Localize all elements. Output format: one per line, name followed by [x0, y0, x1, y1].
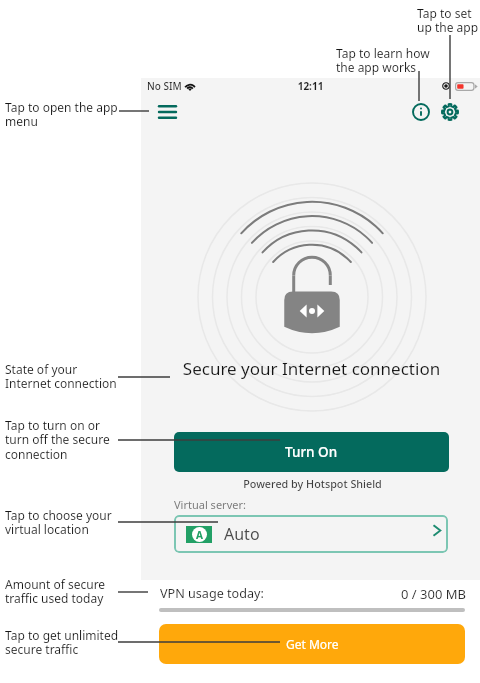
staticText: State of your Internet connection	[5, 361, 117, 392]
staticText: Turn On	[285, 443, 338, 461]
staticText: A	[196, 528, 203, 542]
staticText: Amount of secure traffic used today	[5, 576, 106, 607]
staticText: Powered by Hotspot Shield	[143, 476, 480, 491]
staticText: 12:11	[141, 79, 480, 93]
button[interactable]: Learn how the app works	[403, 94, 439, 130]
staticText: Virtual server:	[174, 497, 246, 512]
staticText: VPN usage today:	[160, 585, 264, 602]
staticText: Tap to open the app menu	[5, 99, 118, 130]
button[interactable]: Turn On	[174, 432, 449, 472]
staticText: 0 / 300 MB	[401, 585, 471, 603]
staticText: Tap to set up the app	[417, 5, 479, 36]
staticText: Tap to turn on or turn off the secure co…	[5, 417, 110, 463]
staticText: No SIM	[147, 79, 182, 93]
staticText: Auto	[224, 523, 260, 545]
staticText: Get More	[286, 636, 339, 652]
button[interactable]: A	[174, 515, 448, 553]
staticText: Secure your Internet connection	[142, 357, 480, 380]
staticText: Tap to learn how the app works	[336, 45, 430, 76]
staticText: Tap to choose your virtual location	[5, 507, 112, 538]
button[interactable]: Set up the app	[432, 94, 468, 130]
staticText: Tap to get unlimited secure traffic	[5, 627, 119, 658]
button[interactable]: Get More	[159, 624, 465, 664]
button[interactable]: Open the app menu	[149, 94, 185, 130]
